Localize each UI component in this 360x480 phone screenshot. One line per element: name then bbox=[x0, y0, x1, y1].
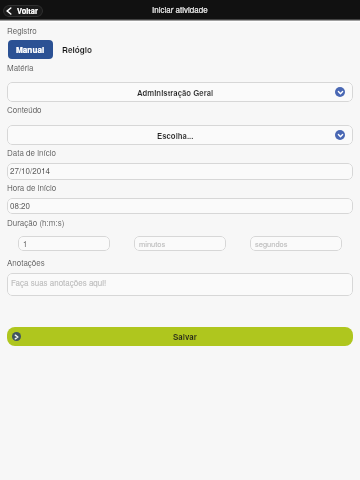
staticText: Salvar bbox=[173, 331, 197, 342]
button[interactable]: Expandir bbox=[335, 130, 345, 140]
staticText: Manual bbox=[16, 44, 45, 56]
staticText: Administração Geral bbox=[137, 87, 214, 98]
staticText: Data de início bbox=[7, 147, 56, 158]
staticText: Relógio bbox=[62, 44, 93, 56]
staticText: segundos bbox=[255, 238, 288, 249]
button[interactable]: Relógio bbox=[53, 40, 97, 59]
staticText: Hora de início bbox=[7, 182, 57, 193]
button[interactable]: segundos bbox=[250, 236, 342, 251]
staticText: Faça suas anotações aqui! bbox=[11, 277, 107, 288]
button[interactable]: Faça suas anotações aqui! bbox=[7, 273, 353, 296]
staticText: Matéria bbox=[7, 62, 34, 73]
button[interactable]: Administração Geral bbox=[7, 82, 353, 102]
staticText: Escolha... bbox=[157, 130, 194, 141]
button[interactable]: Manual bbox=[8, 40, 53, 59]
staticText: Iniciar atividade bbox=[152, 4, 208, 15]
staticText: 08:20 bbox=[10, 200, 31, 211]
button[interactable]: minutos bbox=[134, 236, 226, 251]
staticText: Conteúdo bbox=[7, 104, 42, 115]
staticText: Duração (h:m:s) bbox=[7, 217, 65, 228]
button[interactable]: 1 bbox=[18, 236, 110, 251]
staticText: minutos bbox=[139, 238, 166, 249]
staticText: Anotações bbox=[7, 257, 45, 268]
button[interactable]: 27/10/2014 bbox=[7, 163, 353, 180]
staticText: Voltar bbox=[17, 6, 38, 17]
button[interactable]: 08:20 bbox=[7, 198, 353, 214]
button[interactable]: Voltar bbox=[3, 5, 43, 17]
staticText: 1 bbox=[23, 238, 28, 249]
button[interactable]: Escolha... bbox=[7, 125, 353, 145]
button[interactable]: Expandir bbox=[335, 87, 345, 97]
button[interactable]: Salvar bbox=[7, 327, 353, 346]
staticText: 27/10/2014 bbox=[10, 165, 51, 176]
staticText: Registro bbox=[7, 25, 37, 36]
